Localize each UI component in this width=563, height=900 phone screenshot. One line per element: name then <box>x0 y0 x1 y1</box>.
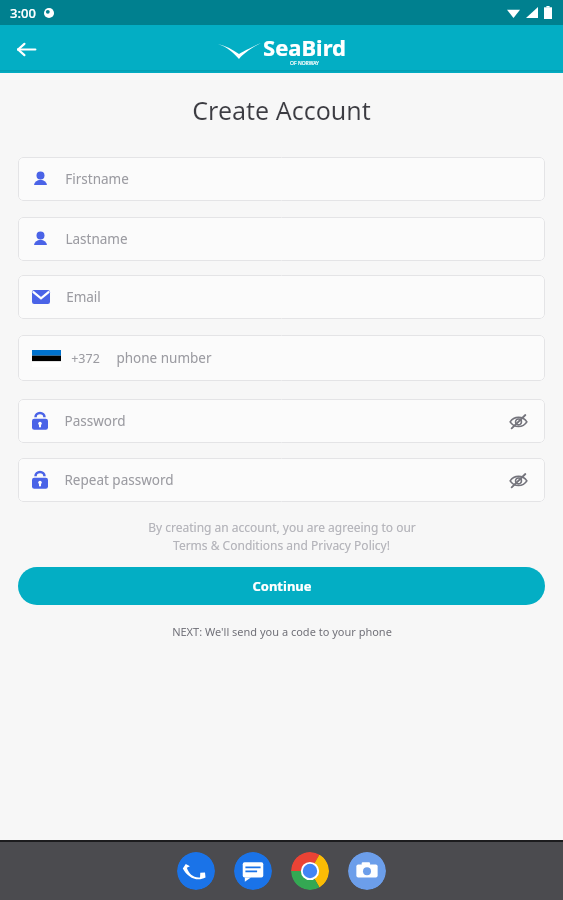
staticText: OF NORWAY <box>290 60 319 67</box>
button[interactable]: Toggle password visibility <box>505 408 531 434</box>
staticText: Repeat password <box>64 471 174 489</box>
button[interactable]: Toggle password visibility <box>505 467 531 493</box>
staticText: Create Account <box>192 93 371 127</box>
button[interactable]: Chrome <box>291 852 329 890</box>
staticText: +372 <box>71 350 100 367</box>
staticText: SeaBird <box>263 32 346 62</box>
button[interactable]: +372 <box>18 335 545 381</box>
staticText: Email <box>66 288 101 306</box>
button[interactable]: Back <box>6 29 46 69</box>
staticText: Password <box>64 412 126 430</box>
button[interactable]: Email <box>18 275 545 319</box>
staticText: NEXT: We'll send you a code to your phon… <box>172 624 392 639</box>
button[interactable]: Continue <box>18 567 545 605</box>
staticText: By creating an account, you are agreeing… <box>148 519 416 535</box>
button[interactable]: Lastname <box>18 217 545 261</box>
button[interactable]: Messages <box>234 852 272 890</box>
staticText: Terms & Conditions and Privacy Policy! <box>173 537 390 553</box>
button[interactable]: Repeat password <box>18 458 545 502</box>
staticText: phone number <box>116 349 212 367</box>
button[interactable]: Firstname <box>18 157 545 201</box>
staticText: Continue <box>252 577 312 595</box>
staticText: Firstname <box>65 170 129 188</box>
button[interactable]: Camera <box>348 852 386 890</box>
staticText: Lastname <box>65 230 128 248</box>
button[interactable]: Password <box>18 399 545 443</box>
staticText: 3:00 <box>10 4 36 22</box>
button[interactable]: Phone <box>177 852 215 890</box>
